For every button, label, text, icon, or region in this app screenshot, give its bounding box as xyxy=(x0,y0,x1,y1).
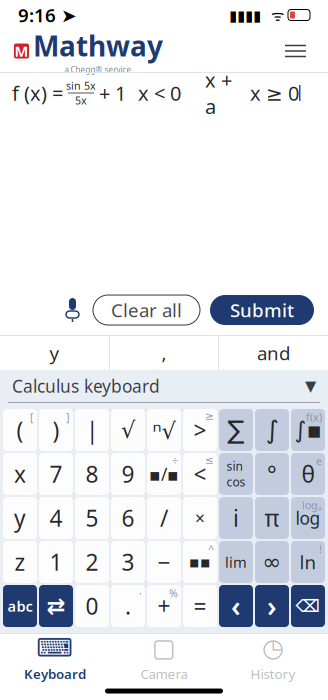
button[interactable]: ° xyxy=(255,453,289,495)
staticText: ⁿ√ xyxy=(152,415,175,445)
button[interactable]: 4 xyxy=(39,497,73,539)
staticText: % xyxy=(169,586,178,600)
staticText: − xyxy=(157,547,170,577)
staticText: Mathway xyxy=(33,27,163,64)
staticText: ⇄ xyxy=(46,593,65,619)
button[interactable]: Submit xyxy=(210,295,314,325)
button[interactable]: ⌫ xyxy=(291,585,325,627)
button[interactable]: z xyxy=(3,541,37,583)
button[interactable]: 7 xyxy=(39,453,73,495)
staticText: 0 xyxy=(85,591,98,621)
staticText: π xyxy=(264,503,279,533)
staticText: ‹ xyxy=(231,587,241,625)
button[interactable]: and xyxy=(219,336,328,370)
button[interactable]: π xyxy=(255,497,289,539)
button[interactable]: ⇄ xyxy=(39,585,73,627)
staticText: 1 xyxy=(49,547,62,577)
staticText: + 1 xyxy=(99,80,126,106)
staticText: . xyxy=(125,591,131,621)
staticText: Calculus keyboard xyxy=(12,374,160,397)
button[interactable]: − xyxy=(147,541,181,583)
staticText: ▪▪ xyxy=(189,553,211,571)
button[interactable]: ∫▪ xyxy=(291,409,325,451)
staticText: ^ xyxy=(208,542,214,556)
button[interactable]: i xyxy=(219,497,253,539)
staticText: [ xyxy=(30,410,34,424)
button[interactable]: ∞ xyxy=(255,541,289,583)
button[interactable]: ‹ xyxy=(219,585,253,627)
button[interactable]: ⁿ√ xyxy=(147,409,181,451)
staticText: Keyboard xyxy=(24,665,86,683)
staticText: ▪/▪ xyxy=(149,462,179,485)
button[interactable]: 1 xyxy=(39,541,73,583)
button[interactable]: 0 xyxy=(75,585,109,627)
button[interactable]: > xyxy=(183,409,217,451)
button[interactable]: lim xyxy=(219,541,253,583)
staticText: ∑ xyxy=(227,416,244,444)
button[interactable]: sin cos xyxy=(219,453,253,495)
staticText: x < 0 xyxy=(138,80,181,106)
button[interactable]: Menu xyxy=(277,37,314,65)
button[interactable]: 3 xyxy=(111,541,145,583)
staticText: 7 xyxy=(49,459,62,489)
staticText: ∞ xyxy=(262,549,281,575)
button[interactable]: Clear all xyxy=(93,295,200,325)
staticText: × xyxy=(195,506,205,529)
staticText: Submit xyxy=(230,298,294,322)
button[interactable]: < xyxy=(183,453,217,495)
button[interactable]: ∑ xyxy=(219,409,253,451)
button[interactable]: y xyxy=(0,336,109,370)
staticText: sin 5x xyxy=(66,78,96,93)
staticText: ▮▮▮▮ ᯤ xyxy=(229,5,284,25)
staticText: , xyxy=(161,341,166,365)
staticText: 9 xyxy=(121,459,134,489)
staticText: and xyxy=(257,341,290,365)
staticText: = xyxy=(193,591,206,621)
button[interactable]: ⌨ xyxy=(0,634,109,682)
staticText: logₐ xyxy=(302,498,322,512)
button[interactable]: | xyxy=(75,409,109,451)
button[interactable]: / xyxy=(147,497,181,539)
button[interactable]: log xyxy=(291,497,325,539)
staticText: M xyxy=(14,41,28,61)
staticText: y xyxy=(49,341,59,365)
staticText: 8 xyxy=(85,459,98,489)
button[interactable]: 6 xyxy=(111,497,145,539)
staticText: 5 xyxy=(85,503,98,533)
button[interactable]: ▢ xyxy=(109,634,218,682)
button[interactable]: × xyxy=(183,497,217,539)
button[interactable]: √ xyxy=(111,409,145,451)
button[interactable]: ) xyxy=(39,409,73,451)
button[interactable]: ( xyxy=(3,409,37,451)
staticText: Camera xyxy=(140,665,187,683)
button[interactable]: ◷ xyxy=(218,634,327,682)
button[interactable]: 9 xyxy=(111,453,145,495)
button[interactable]: , xyxy=(110,336,218,370)
staticText: lim xyxy=(225,552,247,572)
button[interactable]: Voice input xyxy=(62,294,83,326)
button[interactable]: θ xyxy=(291,453,325,495)
button[interactable]: abc xyxy=(3,585,37,627)
button[interactable]: ▪▪ xyxy=(183,541,217,583)
button[interactable]: x xyxy=(3,453,37,495)
button[interactable]: 8 xyxy=(75,453,109,495)
button[interactable]: = xyxy=(183,585,217,627)
button[interactable]: . xyxy=(111,585,145,627)
staticText: ▢ xyxy=(152,633,176,662)
button[interactable]: › xyxy=(255,585,289,627)
staticText: ≥ xyxy=(205,410,214,422)
staticText: + xyxy=(157,591,170,621)
staticText: f (x) = xyxy=(12,80,63,106)
button[interactable]: ▪/▪ xyxy=(147,453,181,495)
button[interactable]: Calculus keyboard xyxy=(0,370,328,403)
staticText: i xyxy=(233,503,239,533)
button[interactable]: 2 xyxy=(75,541,109,583)
button[interactable]: ln xyxy=(291,541,325,583)
button[interactable]: 5 xyxy=(75,497,109,539)
button[interactable]: + xyxy=(147,585,181,627)
button[interactable]: y xyxy=(3,497,37,539)
staticText: z xyxy=(14,547,25,577)
staticText: 3 xyxy=(121,547,134,577)
staticText: ∫▪ xyxy=(294,417,321,443)
button[interactable]: ∫ xyxy=(255,409,289,451)
